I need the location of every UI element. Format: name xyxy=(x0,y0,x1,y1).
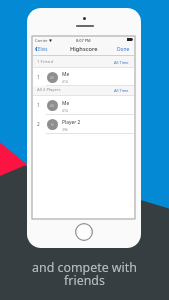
button[interactable]: 1 xyxy=(33,68,134,86)
staticText: 396 xyxy=(62,127,68,131)
staticText: 8:07 PM xyxy=(76,38,91,43)
staticText: 1 Friend xyxy=(37,59,53,65)
button[interactable]: Done xyxy=(113,44,134,55)
staticText: AK xyxy=(50,103,55,108)
staticText: Highscore xyxy=(70,45,98,53)
button[interactable]: All Time xyxy=(114,88,129,93)
staticText: 414 xyxy=(62,79,68,83)
button[interactable]: Elvis xyxy=(33,44,50,54)
staticText: All Time xyxy=(114,88,129,93)
staticText: All 2 Players xyxy=(37,87,61,93)
staticText: All Time xyxy=(114,60,129,65)
staticText: Me xyxy=(62,100,70,107)
staticText: 1 xyxy=(37,74,40,81)
staticText: Done xyxy=(117,46,130,53)
staticText: N xyxy=(51,122,54,127)
staticText: AK xyxy=(50,75,55,80)
staticText: 414 xyxy=(62,108,68,112)
button[interactable]: All Time xyxy=(114,60,129,65)
button[interactable]: 2 xyxy=(33,115,134,134)
staticText: Elvis xyxy=(38,46,48,52)
staticText: Player 2 xyxy=(62,119,81,126)
staticText: Carrier xyxy=(35,38,48,43)
staticText: 1 xyxy=(37,102,40,109)
staticText: Me xyxy=(62,71,70,78)
staticText: 2 xyxy=(37,121,40,128)
other: Home xyxy=(75,223,93,241)
button[interactable]: 1 xyxy=(33,96,134,115)
staticText: and compete with friends xyxy=(32,259,137,289)
